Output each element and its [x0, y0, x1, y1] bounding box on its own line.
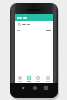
button[interactable]: Settings: [43, 74, 53, 83]
button[interactable]: Scan: [24, 74, 33, 83]
button[interactable]: Back: [18, 83, 27, 92]
button[interactable]: Recent apps: [41, 83, 50, 92]
button[interactable]: [15, 27, 53, 33]
button[interactable]: [15, 21, 53, 27]
button[interactable]: Home: [15, 74, 24, 83]
button[interactable]: History: [33, 74, 43, 83]
button[interactable]: Home: [30, 83, 39, 92]
button[interactable]: [15, 14, 53, 21]
